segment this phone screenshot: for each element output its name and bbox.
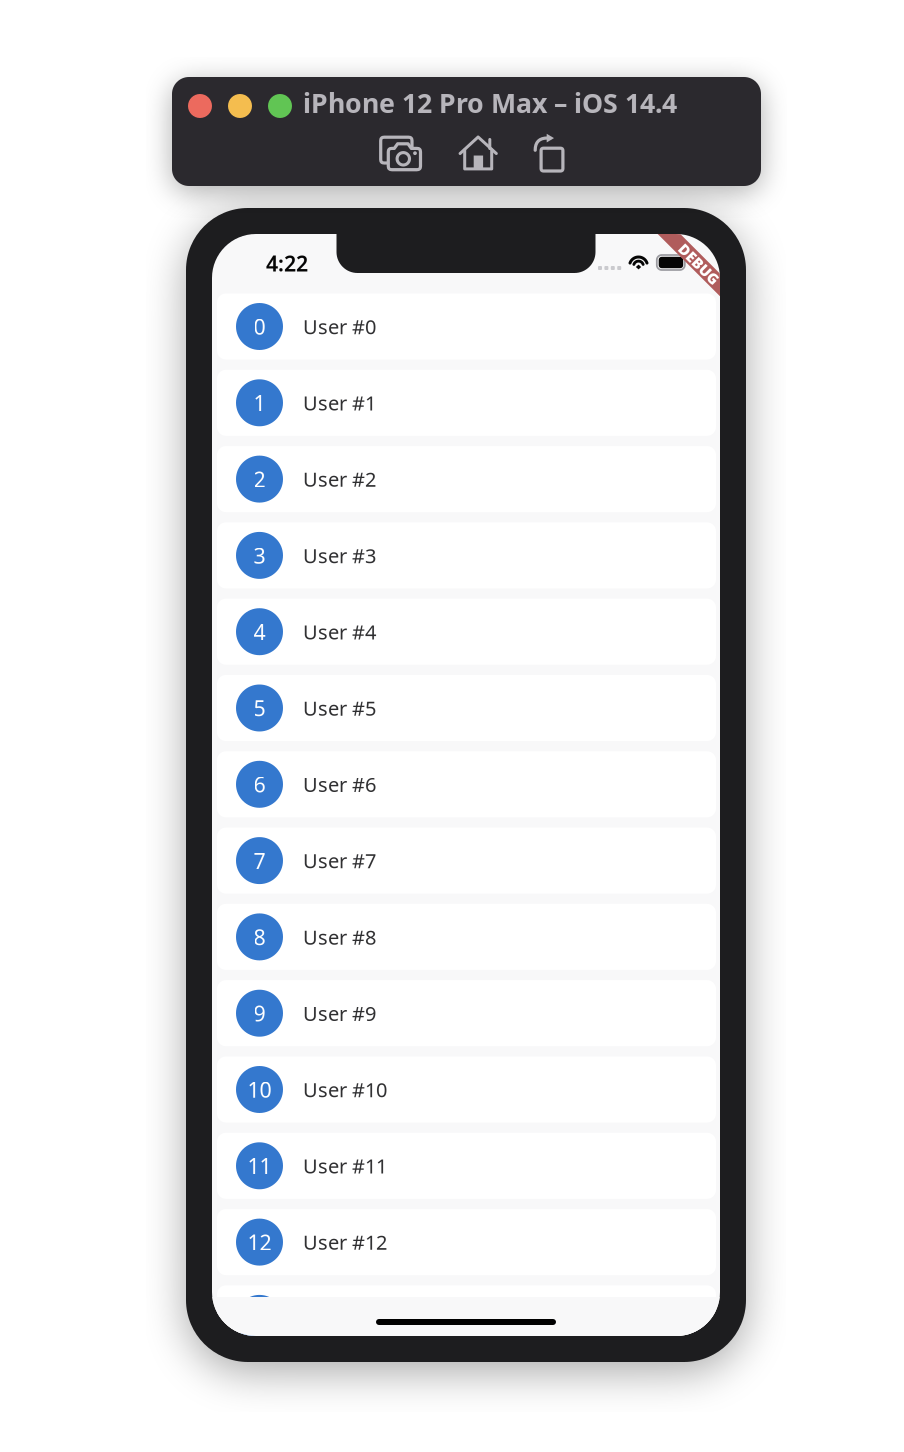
staticText: iPhone 12 Pro Max – iOS 14.4 xyxy=(303,85,677,120)
staticText: 1 xyxy=(253,389,265,417)
staticText: 8 xyxy=(253,923,265,951)
button[interactable]: 7 xyxy=(217,828,716,894)
staticText: User #11 xyxy=(303,1152,387,1179)
button[interactable]: 5 xyxy=(217,675,716,741)
staticText: 9 xyxy=(253,999,265,1027)
staticText: User #2 xyxy=(303,466,376,492)
staticText: 10 xyxy=(247,1075,271,1104)
staticText: User #4 xyxy=(303,618,376,645)
button[interactable]: 11 xyxy=(217,1133,716,1199)
staticText: User #0 xyxy=(303,313,376,340)
staticText: User #7 xyxy=(303,847,376,874)
button[interactable]: Rotate xyxy=(533,135,564,171)
button[interactable]: 10 xyxy=(217,1056,716,1122)
staticText: User #8 xyxy=(303,924,376,950)
staticText: 2 xyxy=(253,465,265,493)
staticText: User #12 xyxy=(303,1229,387,1255)
button[interactable]: 13 xyxy=(217,1285,716,1351)
staticText: 6 xyxy=(253,770,265,798)
button[interactable]: 0 xyxy=(217,293,716,359)
button[interactable]: 1 xyxy=(217,370,716,436)
staticText: 4 xyxy=(253,617,265,646)
staticText: 3 xyxy=(253,541,265,569)
staticText: User #9 xyxy=(303,1000,376,1026)
staticText: 4:22 xyxy=(266,249,308,277)
button[interactable]: 8 xyxy=(217,904,716,970)
button[interactable]: 3 xyxy=(217,522,716,588)
staticText: 0 xyxy=(253,312,265,341)
button[interactable]: 12 xyxy=(217,1209,716,1275)
button[interactable]: Home xyxy=(458,134,498,171)
button[interactable]: Screenshot xyxy=(377,131,421,167)
staticText: DEBUG xyxy=(673,254,724,274)
staticText: User #10 xyxy=(303,1076,387,1103)
staticText: User #13 xyxy=(303,1305,387,1332)
staticText: User #5 xyxy=(303,695,376,721)
staticText: 5 xyxy=(253,694,265,722)
staticText: 7 xyxy=(253,846,265,875)
staticText: User #1 xyxy=(303,389,376,416)
staticText: User #6 xyxy=(303,771,376,798)
staticText: 11 xyxy=(247,1152,271,1180)
button[interactable]: 2 xyxy=(217,446,716,512)
staticText: 12 xyxy=(247,1228,271,1256)
staticText: User #3 xyxy=(303,542,376,569)
button[interactable]: 4 xyxy=(217,599,716,665)
button[interactable]: 9 xyxy=(217,980,716,1046)
button[interactable]: 6 xyxy=(217,751,716,817)
